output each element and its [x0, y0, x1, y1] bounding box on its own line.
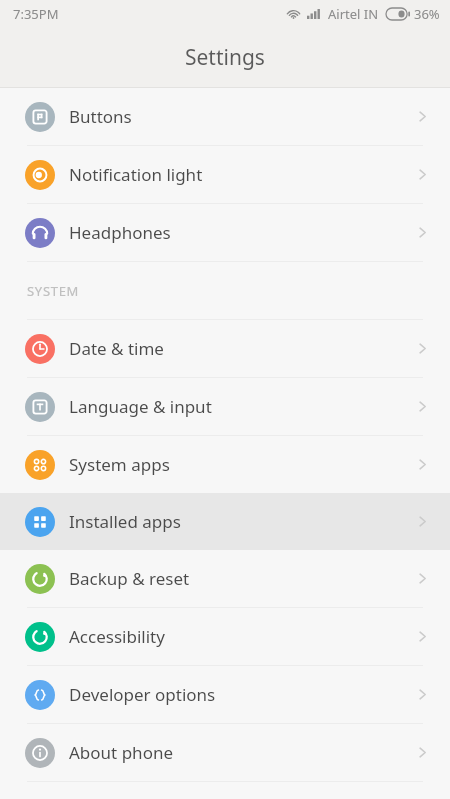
button[interactable]: Backup & reset — [0, 550, 450, 607]
button[interactable]: Developer options — [0, 666, 450, 723]
staticText: System apps — [69, 453, 170, 476]
staticText: Settings — [185, 43, 265, 72]
staticText: 36% — [414, 5, 440, 23]
button[interactable]: Date & time — [0, 320, 450, 377]
other: Open Installed apps — [415, 514, 430, 529]
staticText: Installed apps — [69, 510, 181, 533]
staticText: About phone — [69, 741, 174, 764]
other: Open Buttons — [415, 109, 430, 124]
staticText: 7:35PM — [13, 5, 59, 23]
other: Open Developer options — [415, 687, 430, 702]
staticText: Date & time — [69, 337, 164, 360]
button[interactable]: Buttons — [0, 88, 450, 145]
button[interactable]: Accessibility — [0, 608, 450, 665]
staticText: Language & input — [69, 395, 212, 418]
button[interactable]: Installed apps — [0, 493, 450, 550]
staticText: SYSTEM — [27, 282, 80, 300]
staticText: Notification light — [69, 163, 203, 186]
other: Open Notification light — [415, 167, 430, 182]
other: Open Headphones — [415, 225, 430, 240]
other: Open Date & time — [415, 341, 430, 356]
staticText: Accessibility — [69, 625, 165, 648]
button[interactable]: About phone — [0, 724, 450, 781]
button[interactable]: System apps — [0, 436, 450, 493]
staticText: Headphones — [69, 221, 171, 244]
button[interactable]: Headphones — [0, 204, 450, 261]
staticText: Airtel IN — [328, 5, 379, 23]
button[interactable]: Notification light — [0, 146, 450, 203]
other: Open Accessibility — [415, 629, 430, 644]
other: Open Backup & reset — [415, 571, 430, 586]
other: Open About phone — [415, 745, 430, 760]
staticText: Developer options — [69, 683, 216, 706]
button[interactable]: Language & input — [0, 378, 450, 435]
staticText: Buttons — [69, 105, 132, 128]
other: Open System apps — [415, 457, 430, 472]
staticText: Backup & reset — [69, 567, 190, 590]
other: Open Language & input — [415, 399, 430, 414]
